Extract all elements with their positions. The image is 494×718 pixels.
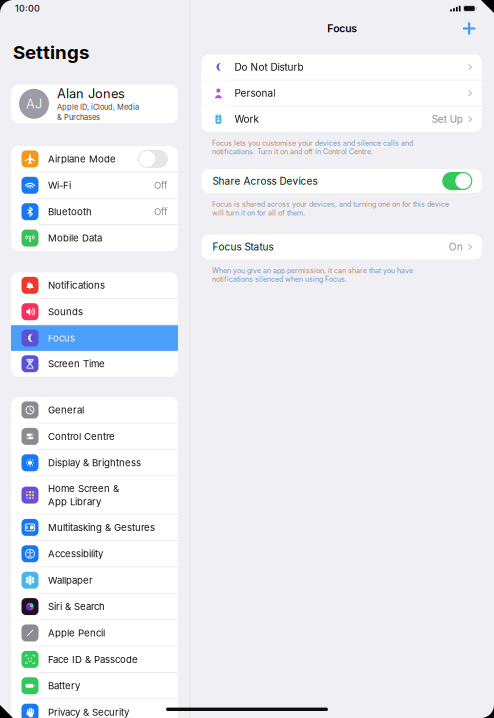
staticText: Set Up <box>432 113 463 125</box>
button[interactable]: Share Across Devices <box>201 169 482 193</box>
button[interactable]: Face ID & Passcode <box>11 646 178 672</box>
staticText: Screen Time <box>48 358 105 370</box>
button[interactable]: Mobile Data <box>11 225 178 251</box>
staticText: Do Not Disturb <box>234 61 303 73</box>
staticText: Siri & Search <box>48 601 105 612</box>
button[interactable]: Do Not Disturb <box>201 54 482 80</box>
staticText: Off <box>154 206 168 217</box>
staticText: App Library <box>48 496 101 507</box>
staticText: Notifications <box>48 279 105 291</box>
staticText: Apple ID, iCloud, Media <box>57 102 139 111</box>
button[interactable]: Focus <box>11 325 178 351</box>
staticText: Focus <box>48 332 75 344</box>
button[interactable]: Work <box>201 107 482 132</box>
button[interactable]: Sounds <box>11 299 178 324</box>
button[interactable]: Bluetooth <box>11 199 178 224</box>
button[interactable]: Notifications <box>11 272 178 298</box>
button[interactable]: Screen Time <box>11 351 178 377</box>
staticText: Focus is shared across your devices, and… <box>212 200 449 217</box>
staticText: 10:00 <box>15 3 40 14</box>
staticText: Off <box>154 179 168 191</box>
button[interactable]: Add Focus <box>459 18 479 39</box>
staticText: Accessibility <box>48 548 103 560</box>
button[interactable]: Apple Pencil <box>11 620 178 646</box>
staticText: General <box>48 404 84 416</box>
button[interactable]: Display & Brightness <box>11 450 178 476</box>
button[interactable]: Wi-Fi <box>11 172 178 198</box>
staticText: Home Screen & <box>48 483 119 494</box>
button[interactable]: Control Centre <box>11 423 178 449</box>
button[interactable]: Siri & Search <box>11 594 178 619</box>
button[interactable]: Battery <box>11 673 178 699</box>
staticText: Wallpaper <box>48 574 93 586</box>
staticText: AJ <box>26 96 42 111</box>
button[interactable]: Personal <box>201 80 482 106</box>
button[interactable]: Airplane Mode <box>11 146 178 172</box>
staticText: Focus <box>327 22 357 35</box>
staticText: Bluetooth <box>48 206 92 217</box>
button[interactable]: Home Screen & <box>11 476 178 514</box>
button[interactable]: Privacy & Security <box>11 699 178 718</box>
staticText: Work <box>234 113 258 125</box>
staticText: Battery <box>48 680 80 692</box>
button[interactable]: Accessibility <box>11 541 178 567</box>
staticText: Airplane Mode <box>48 153 116 165</box>
button[interactable]: Multitasking & Gestures <box>11 514 178 540</box>
staticText: Multitasking & Gestures <box>48 522 155 533</box>
staticText: Sounds <box>48 306 83 317</box>
staticText: & Purchases <box>57 113 100 122</box>
staticText: Share Across Devices <box>212 175 317 187</box>
staticText: Alan Jones <box>57 86 125 101</box>
staticText: Mobile Data <box>48 232 102 244</box>
button[interactable]: Wallpaper <box>11 567 178 593</box>
staticText: Control Centre <box>48 431 115 442</box>
staticText: Focus lets you customise your devices an… <box>212 139 413 156</box>
staticText: Settings <box>13 41 89 64</box>
staticText: Focus Status <box>212 241 273 253</box>
staticText: Face ID & Passcode <box>48 654 138 665</box>
staticText: Apple Pencil <box>48 627 105 639</box>
button[interactable]: General <box>11 397 178 423</box>
staticText: Privacy & Security <box>48 706 129 718</box>
staticText: Personal <box>234 87 275 99</box>
staticText: When you give an app permission, it can … <box>212 266 413 283</box>
staticText: On <box>449 241 463 253</box>
button[interactable]: Focus Status <box>201 234 482 259</box>
staticText: Display & Brightness <box>48 457 141 469</box>
staticText: Wi-Fi <box>48 179 71 191</box>
button[interactable]: AJ <box>11 84 178 123</box>
